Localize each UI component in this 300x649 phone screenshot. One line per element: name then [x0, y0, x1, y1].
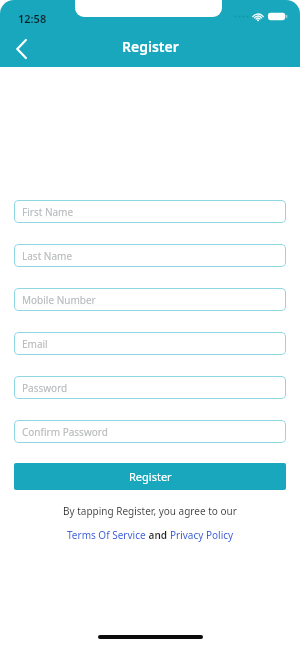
- button[interactable]: First Name: [14, 200, 286, 223]
- button[interactable]: Confirm Password: [14, 420, 286, 443]
- staticText: 12:58: [18, 11, 47, 26]
- button[interactable]: Register: [14, 463, 286, 490]
- staticText: Confirm Password: [22, 425, 108, 439]
- staticText: Register: [122, 37, 179, 56]
- staticText: Register: [129, 469, 172, 484]
- staticText: First Name: [22, 205, 74, 219]
- staticText: Mobile Number: [22, 293, 96, 307]
- button[interactable]: Password: [14, 376, 286, 399]
- staticText: and: [146, 528, 170, 542]
- staticText: Password: [22, 381, 68, 395]
- button[interactable]: Back: [5, 33, 37, 65]
- button[interactable]: Terms Of Service: [67, 528, 146, 542]
- staticText: By tapping Register, you agree to our: [63, 504, 237, 518]
- staticText: Email: [22, 337, 48, 351]
- button[interactable]: Privacy Policy: [170, 528, 234, 542]
- button[interactable]: Last Name: [14, 244, 286, 267]
- staticText: Terms Of Service: [67, 528, 146, 542]
- button[interactable]: Email: [14, 332, 286, 355]
- button[interactable]: Mobile Number: [14, 288, 286, 311]
- staticText: Privacy Policy: [170, 528, 234, 542]
- staticText: Last Name: [22, 249, 73, 263]
